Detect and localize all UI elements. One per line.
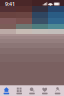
button[interactable]: Home: [0, 85, 13, 96]
staticText: 9:41: [5, 0, 15, 8]
button[interactable]: Browse: [13, 85, 26, 96]
button[interactable]: Profile: [51, 85, 64, 96]
button[interactable]: Search: [26, 85, 38, 96]
button[interactable]: Favorites: [38, 85, 51, 96]
